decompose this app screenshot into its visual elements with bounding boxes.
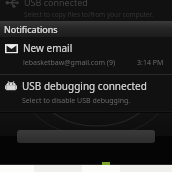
staticText: USB debugging connected	[22, 79, 147, 93]
button[interactable]: Gmail	[0, 37, 172, 74]
other: Android	[5, 80, 17, 92]
other: USB	[5, 0, 19, 8]
staticText: 3:14 PM	[137, 58, 164, 68]
staticText: New email	[23, 41, 73, 55]
button[interactable]: Android	[0, 75, 172, 111]
button[interactable]: USB	[0, 0, 172, 21]
staticText: USB connected	[24, 0, 88, 8]
staticText: lebasketbaw@gmail.com (9)	[23, 58, 137, 68]
button[interactable]: Dock	[17, 130, 155, 143]
staticText: Notifications	[4, 23, 58, 35]
staticText: Select to disable USB debugging.	[22, 96, 131, 106]
staticText: Select to copy files to/from your comput…	[24, 10, 154, 19]
other: Gmail	[5, 42, 18, 55]
